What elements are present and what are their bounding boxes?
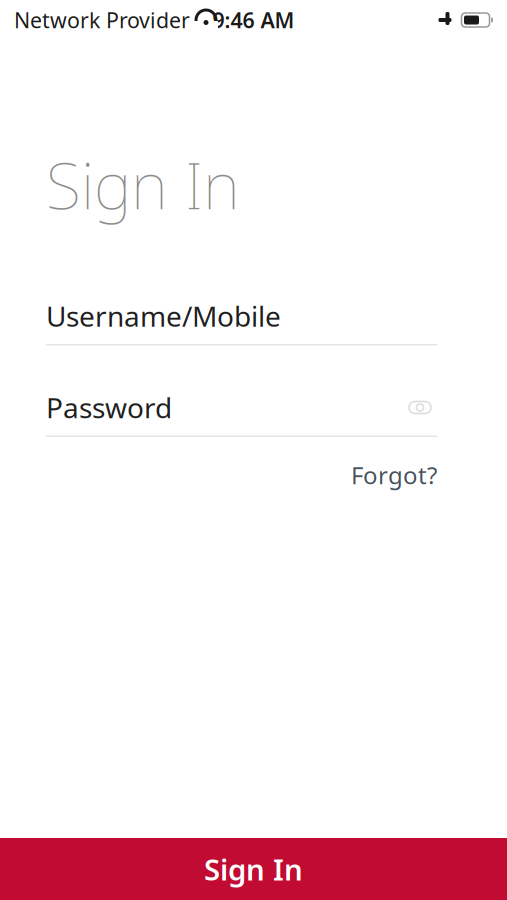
button[interactable]: Forgot?	[351, 453, 437, 497]
staticText: Username/Mobile	[46, 297, 281, 335]
staticText: Forgot?	[351, 459, 437, 491]
staticText: Sign In	[46, 142, 240, 227]
button[interactable]: Show password	[403, 392, 437, 422]
button[interactable]: Sign In	[0, 838, 507, 900]
staticText: 9:46 AM	[212, 6, 294, 34]
staticText: Sign In	[204, 849, 303, 888]
staticText: Password	[46, 389, 172, 426]
staticText: Network Provider	[14, 6, 190, 34]
